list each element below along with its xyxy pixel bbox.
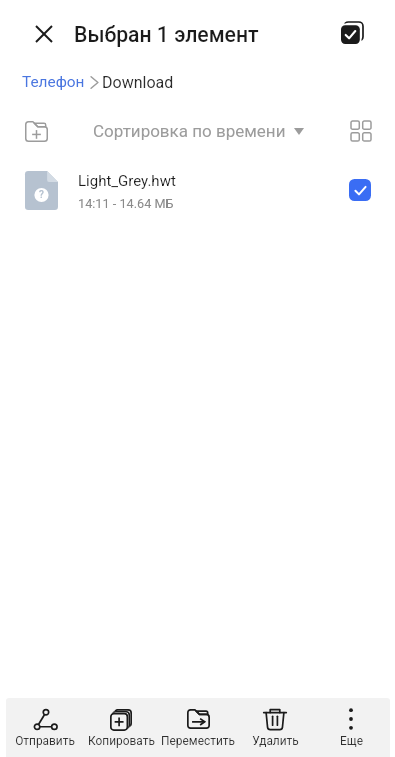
button[interactable]: Close [22,11,66,55]
staticText: 14:11 - 14.64 МБ [78,196,174,211]
button[interactable]: Selected [338,168,382,212]
staticText: Переместить [161,734,235,748]
button[interactable]: Удалить [237,698,313,757]
staticText: Удалить [252,734,299,748]
staticText: Сортировка по времени [93,121,286,141]
button[interactable]: Отправить [7,698,83,757]
button[interactable]: Select all [330,11,373,54]
button[interactable]: Grid view [340,109,384,153]
button[interactable]: Телефон [22,73,85,91]
staticText: Light_Grey.hwt [78,172,176,190]
button[interactable]: Копировать [83,698,159,757]
staticText: Еще [340,734,363,748]
staticText: Отправить [15,734,75,748]
button[interactable]: ? [0,158,395,222]
button[interactable]: Сортировка по времени [93,118,304,144]
button[interactable]: Переместить [160,698,236,757]
staticText: ? [39,189,44,201]
staticText: Копировать [88,734,155,748]
staticText: Выбран 1 элемент [74,22,259,47]
button[interactable]: New folder [14,109,58,153]
button[interactable]: Download [102,73,174,92]
button[interactable]: Еще [313,698,389,757]
